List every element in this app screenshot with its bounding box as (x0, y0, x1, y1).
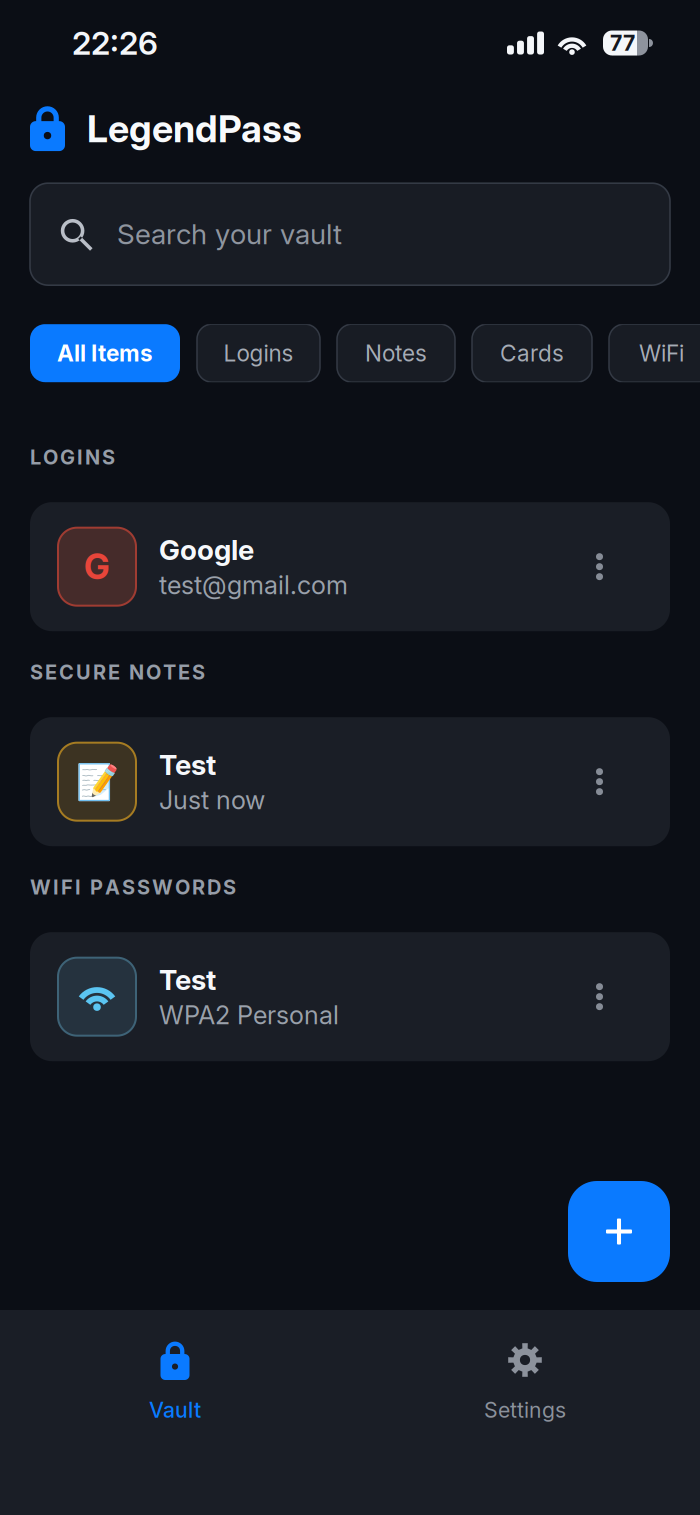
staticText: 📝 (75, 761, 118, 802)
staticText: Logins (223, 339, 293, 367)
staticText: L O G I N S (30, 445, 115, 469)
staticText: W I F I P A S S W O R D S (30, 875, 236, 899)
staticText: LegendPass (87, 106, 302, 151)
staticText: Cards (500, 339, 564, 367)
staticText: Just now (159, 785, 265, 815)
staticText: Settings (484, 1397, 566, 1423)
staticText: All Items (57, 339, 153, 367)
button[interactable]: Vault (0, 1341, 350, 1423)
staticText: S E C U R E N O T E S (30, 660, 205, 684)
button[interactable]: Cards (472, 324, 592, 382)
staticText: Google (159, 533, 254, 567)
staticText: Vault (149, 1397, 201, 1423)
button[interactable]: 📝 (30, 717, 670, 846)
button[interactable]: G (30, 502, 670, 631)
staticText: WiFi (639, 339, 684, 367)
button[interactable]: WiFi (609, 324, 700, 382)
button[interactable]: Logins (197, 324, 320, 382)
button[interactable]: Add item (568, 1181, 670, 1282)
staticText: test@gmail.com (159, 570, 348, 600)
staticText: Test (159, 748, 216, 782)
staticText: Notes (365, 339, 427, 367)
staticText: G (84, 546, 110, 588)
staticText: 22:26 (72, 24, 158, 62)
button[interactable]: Notes (337, 324, 455, 382)
button[interactable]: Test (30, 932, 670, 1061)
button[interactable]: All Items (30, 324, 180, 382)
button[interactable]: Settings (350, 1341, 700, 1423)
staticText: WPA2 Personal (159, 1000, 339, 1030)
staticText: 77 (610, 30, 635, 56)
staticText: Test (159, 963, 216, 997)
staticText: Search your vault (117, 217, 342, 251)
